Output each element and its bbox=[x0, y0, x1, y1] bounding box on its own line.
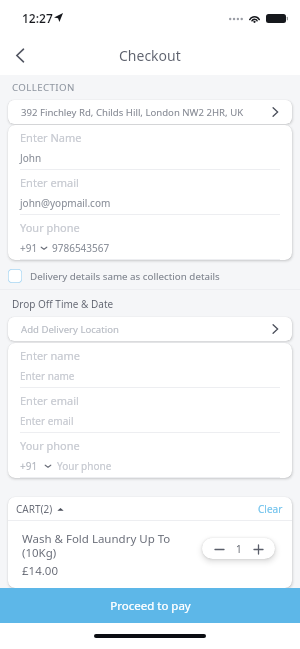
staticText: Your phone bbox=[20, 220, 80, 235]
staticText: CART(2) bbox=[16, 502, 53, 516]
button[interactable]: Clear bbox=[258, 502, 283, 516]
staticText: 12:27 bbox=[22, 10, 53, 26]
button[interactable]: Decrease quantity bbox=[209, 539, 229, 559]
staticText: john@yopmail.com bbox=[20, 196, 111, 210]
staticText: £14.00 bbox=[22, 563, 58, 578]
staticText: Enter Name bbox=[20, 130, 82, 145]
staticText: COLLECTION bbox=[12, 81, 75, 94]
button[interactable]: Back bbox=[0, 36, 40, 75]
staticText: John bbox=[20, 151, 42, 165]
staticText: Your phone bbox=[20, 438, 80, 453]
staticText: Your phone bbox=[57, 459, 112, 473]
staticText: 392 Finchley Rd, Childs Hill, London NW2… bbox=[21, 106, 244, 119]
staticText: Enter name bbox=[20, 369, 75, 383]
staticText: Enter email bbox=[20, 414, 74, 428]
button[interactable]: Delivery details same as collection deta… bbox=[0, 260, 300, 289]
staticText: Delivery details same as collection deta… bbox=[30, 270, 220, 283]
staticText: Checkout bbox=[119, 46, 181, 65]
button[interactable]: 392 Finchley Rd, Childs Hill, London NW2… bbox=[8, 100, 292, 124]
staticText: 1 bbox=[236, 542, 242, 556]
staticText: Add Delivery Location bbox=[21, 323, 119, 336]
staticText: 9786543567 bbox=[52, 241, 110, 255]
staticText: Drop Off Time & Date bbox=[12, 297, 114, 311]
staticText: Wash & Fold Laundry Up To (10Kg) bbox=[22, 531, 187, 560]
staticText: Enter email bbox=[20, 175, 79, 190]
button[interactable]: CART(2) bbox=[16, 502, 64, 516]
button[interactable]: Increase quantity bbox=[248, 539, 268, 559]
staticText: Enter email bbox=[20, 393, 79, 408]
staticText: Proceed to pay bbox=[110, 598, 191, 614]
staticText: Enter name bbox=[20, 348, 80, 363]
staticText: +91 bbox=[20, 459, 38, 473]
button[interactable]: Add Delivery Location bbox=[8, 317, 292, 341]
staticText: +91 bbox=[20, 241, 38, 255]
button[interactable]: Proceed to pay bbox=[0, 588, 300, 623]
